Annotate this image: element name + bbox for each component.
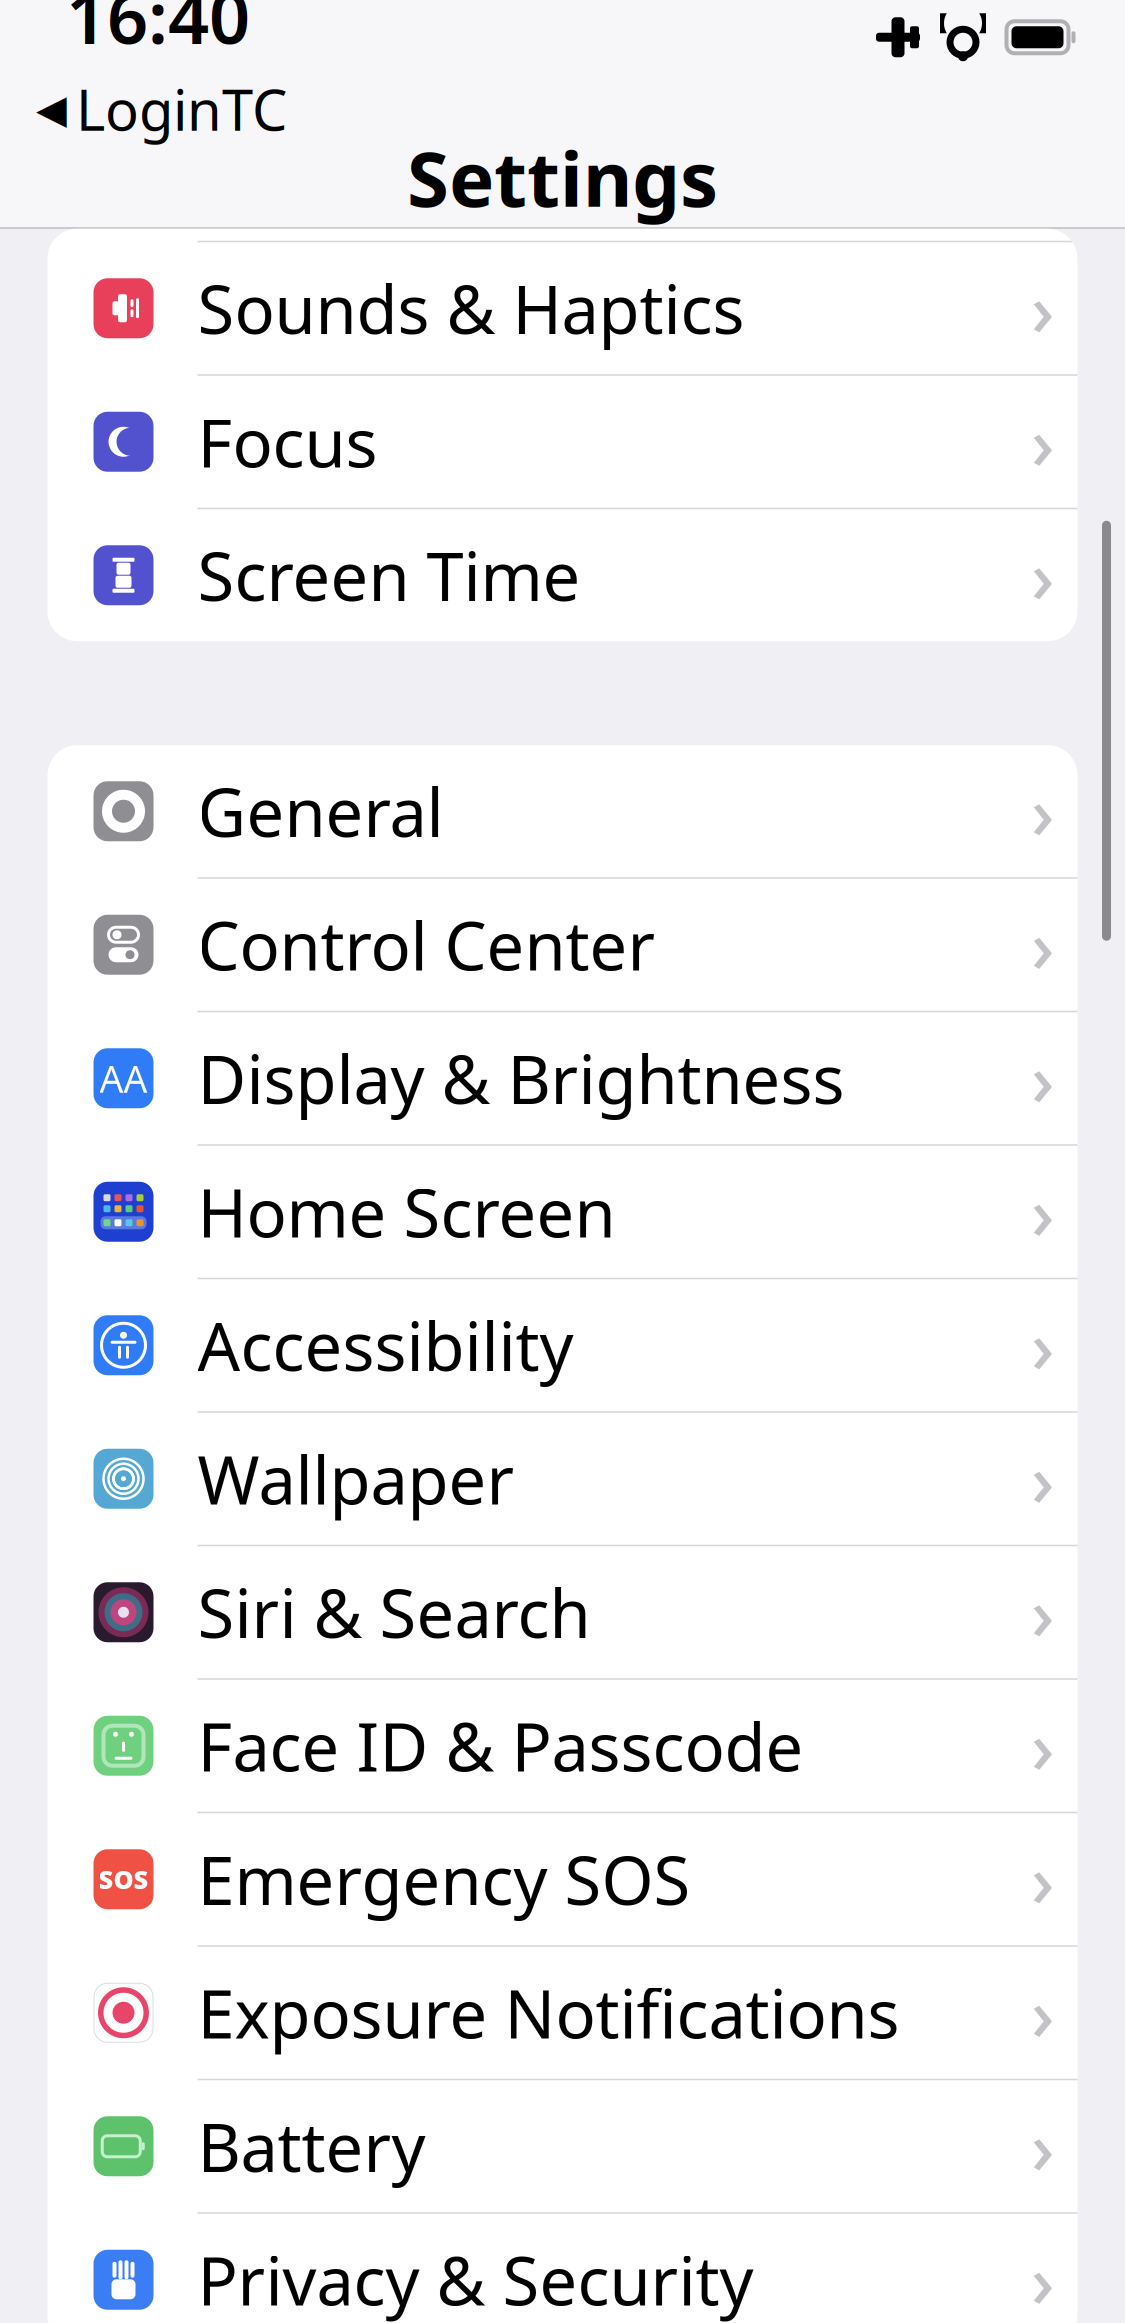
staticText: Wallpaper bbox=[197, 1434, 514, 1523]
staticText: Siri & Search bbox=[197, 1568, 590, 1656]
staticText: Settings bbox=[407, 127, 718, 228]
button[interactable]: Exposure Notifications bbox=[47, 1947, 1077, 2080]
button[interactable]: ◀ bbox=[0, 72, 437, 146]
button[interactable]: Screen Time bbox=[47, 509, 1077, 641]
button[interactable]: Siri & Search bbox=[47, 1546, 1077, 1680]
staticText: › bbox=[1031, 1831, 1054, 1927]
staticText: General bbox=[197, 767, 443, 855]
staticText: Battery bbox=[197, 2102, 425, 2190]
staticText: AA bbox=[99, 1053, 147, 1103]
staticText: 16:40 bbox=[66, 0, 250, 64]
button[interactable]: Privacy & Security bbox=[47, 2214, 1077, 2323]
button[interactable]: Battery bbox=[47, 2080, 1077, 2214]
staticText: Emergency SOS bbox=[197, 1835, 690, 1923]
staticText: › bbox=[1031, 897, 1054, 992]
staticText: Sounds & Haptics bbox=[197, 264, 744, 352]
staticText: Control Center bbox=[197, 900, 655, 989]
staticText: Privacy & Security bbox=[197, 2235, 753, 2323]
staticText: Accessibility bbox=[197, 1301, 573, 1389]
button[interactable]: Accessibility bbox=[47, 1279, 1077, 1413]
staticText: Face ID & Passcode bbox=[197, 1701, 803, 1790]
button[interactable]: Face ID & Passcode bbox=[47, 1680, 1077, 1813]
staticText: › bbox=[1031, 394, 1054, 489]
staticText: ◀ bbox=[36, 86, 67, 132]
button[interactable]: Wallpaper bbox=[47, 1413, 1077, 1546]
button[interactable]: Focus bbox=[47, 376, 1077, 509]
staticText: › bbox=[1031, 1431, 1054, 1526]
staticText: › bbox=[1031, 1297, 1054, 1393]
staticText: Screen Time bbox=[197, 531, 580, 619]
staticText: › bbox=[1031, 763, 1054, 859]
staticText: Focus bbox=[197, 397, 377, 486]
staticText: › bbox=[1031, 1698, 1054, 1793]
button[interactable]: AA bbox=[47, 1012, 1077, 1146]
staticText: Home Screen bbox=[197, 1167, 615, 1256]
button[interactable]: Sounds & Haptics bbox=[47, 242, 1077, 376]
staticText: › bbox=[1031, 260, 1054, 356]
staticText: › bbox=[1031, 2232, 1054, 2323]
staticText: › bbox=[1031, 1164, 1054, 1259]
staticText: SOS bbox=[98, 1862, 148, 1896]
staticText: › bbox=[1031, 527, 1054, 623]
button[interactable]: Control Center bbox=[47, 879, 1077, 1012]
staticText: › bbox=[1031, 1564, 1054, 1660]
staticText: LoginTC bbox=[76, 72, 287, 146]
staticText: › bbox=[1031, 1030, 1054, 1126]
staticText: › bbox=[1031, 2098, 1054, 2194]
button[interactable]: General bbox=[47, 745, 1077, 879]
button[interactable]: Home Screen bbox=[47, 1146, 1077, 1279]
staticText: › bbox=[1031, 1965, 1054, 2060]
staticText: Display & Brightness bbox=[197, 1034, 844, 1122]
button[interactable]: SOS bbox=[47, 1813, 1077, 1947]
staticText: Exposure Notifications bbox=[197, 1968, 899, 2057]
